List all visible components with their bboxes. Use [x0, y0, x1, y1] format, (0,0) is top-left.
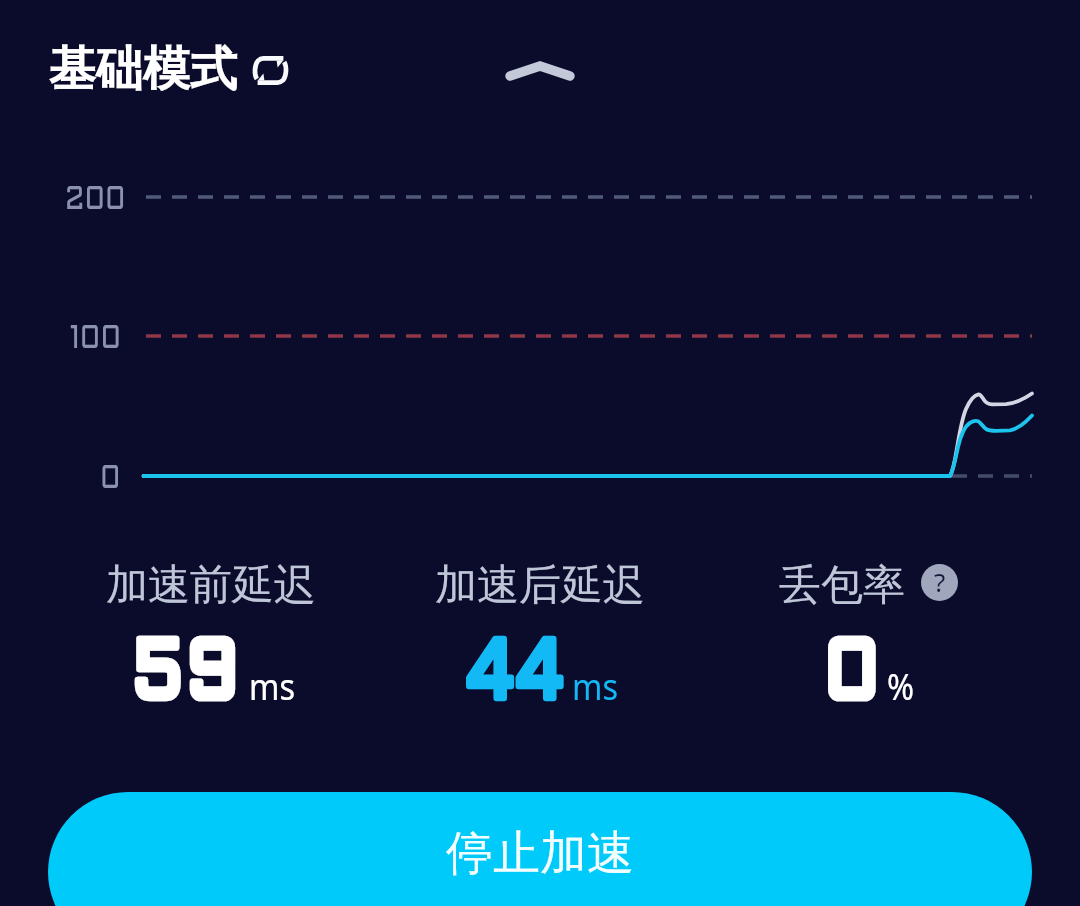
- staticText: 0: [100, 465, 121, 495]
- staticText: 丢包率: [779, 559, 905, 612]
- button[interactable]: 基础模式: [40, 40, 299, 99]
- staticText: 100: [70, 325, 121, 355]
- staticText: 加速前延迟: [106, 559, 316, 612]
- staticText: 停止加速: [446, 824, 634, 883]
- staticText: ?: [934, 564, 946, 599]
- staticText: 基础模式: [49, 40, 237, 99]
- staticText: 200: [65, 186, 126, 216]
- staticText: 59: [134, 638, 243, 716]
- button[interactable]: Collapse: [485, 42, 595, 100]
- staticText: 0: [824, 638, 884, 716]
- staticText: 加速后延迟: [435, 559, 645, 612]
- button[interactable]: 停止加速: [48, 792, 1032, 906]
- staticText: ms: [249, 660, 296, 710]
- staticText: 0: [824, 638, 884, 716]
- staticText: 44: [467, 638, 566, 716]
- staticText: 44: [467, 638, 566, 716]
- other: Switch mode: [252, 56, 289, 85]
- staticText: 59: [134, 638, 243, 716]
- staticText: ms: [572, 660, 619, 710]
- button[interactable]: Help: [921, 564, 958, 601]
- staticText: %: [887, 660, 914, 710]
